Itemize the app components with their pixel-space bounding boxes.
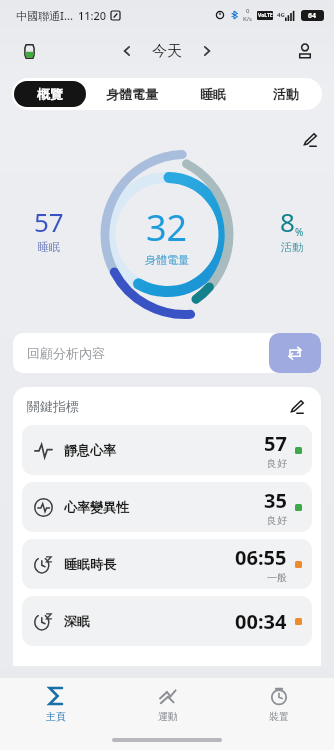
staticText: 00:34	[235, 608, 287, 635]
button[interactable]: Edit metrics	[285, 395, 307, 417]
staticText: 今天	[152, 42, 182, 61]
staticText: 57	[264, 430, 287, 457]
staticText: 活動	[273, 86, 299, 102]
staticText: 心率變異性	[64, 499, 264, 515]
staticText: 睡眠	[38, 240, 60, 254]
button[interactable]: Next day	[192, 36, 222, 66]
staticText: 活動	[281, 240, 303, 254]
button[interactable]: Refresh analysis	[269, 333, 321, 373]
staticText: 深眠	[64, 613, 235, 629]
button[interactable]: 靜息心率	[22, 425, 312, 475]
button[interactable]: 裝置	[223, 678, 334, 730]
staticText: 11:20	[78, 8, 107, 23]
staticText: 身體電量	[145, 253, 189, 267]
staticText: VoLTE	[258, 12, 273, 19]
button[interactable]: 睡眠時長	[22, 539, 312, 589]
button[interactable]: 活動	[251, 81, 320, 107]
staticText: 中國聯通I...	[16, 8, 73, 23]
staticText: 運動	[158, 710, 178, 723]
button[interactable]: 身體電量	[90, 81, 174, 107]
staticText: 32	[146, 203, 188, 252]
staticText: 0	[246, 7, 250, 15]
staticText: 靜息心率	[64, 442, 264, 458]
button[interactable]: 睡眠	[178, 81, 247, 107]
button[interactable]: 運動	[112, 678, 223, 730]
staticText: 4G	[277, 11, 285, 19]
staticText: K/s	[243, 15, 252, 23]
staticText: 一般	[267, 571, 287, 584]
button[interactable]: 心率變異性	[22, 482, 312, 532]
staticText: 06:55	[235, 544, 287, 571]
staticText: 回顧分析內容	[27, 345, 269, 361]
button[interactable]: 深眠	[22, 596, 312, 646]
staticText: 睡眠時長	[64, 556, 235, 572]
staticText: 身體電量	[106, 86, 158, 102]
staticText: 57	[34, 204, 64, 239]
staticText: 64	[308, 11, 317, 21]
button[interactable]: Watch device	[14, 36, 44, 66]
button[interactable]: Edit	[298, 128, 320, 150]
staticText: 裝置	[269, 710, 289, 723]
staticText: 良好	[267, 457, 287, 470]
button[interactable]: Profile	[290, 36, 320, 66]
staticText: 8	[280, 204, 295, 239]
staticText: 睡眠	[200, 86, 226, 102]
button[interactable]: 概覽	[14, 81, 86, 107]
button[interactable]: 主頁	[0, 678, 112, 730]
staticText: 主頁	[46, 710, 66, 723]
staticText: 關鍵指標	[27, 398, 285, 414]
button[interactable]: 回顧分析內容	[13, 333, 321, 373]
staticText: %	[295, 225, 304, 239]
button[interactable]: Previous day	[112, 36, 142, 66]
staticText: 概覽	[37, 86, 63, 102]
staticText: 35	[264, 487, 287, 514]
staticText: 良好	[267, 514, 287, 527]
